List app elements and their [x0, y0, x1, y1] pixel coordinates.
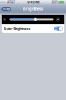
button[interactable]: Settings [1, 7, 11, 11]
staticText: Settings [3, 8, 10, 10]
staticText: Brightness [23, 7, 43, 11]
staticText: 83% [52, 0, 59, 4]
staticText: AT&T [7, 0, 15, 4]
staticText: 9:41 PM [27, 0, 39, 4]
staticText: ON [55, 26, 58, 32]
staticText: Auto-Brightness [3, 27, 30, 31]
button[interactable]: Auto-Brightness [2, 24, 64, 33]
